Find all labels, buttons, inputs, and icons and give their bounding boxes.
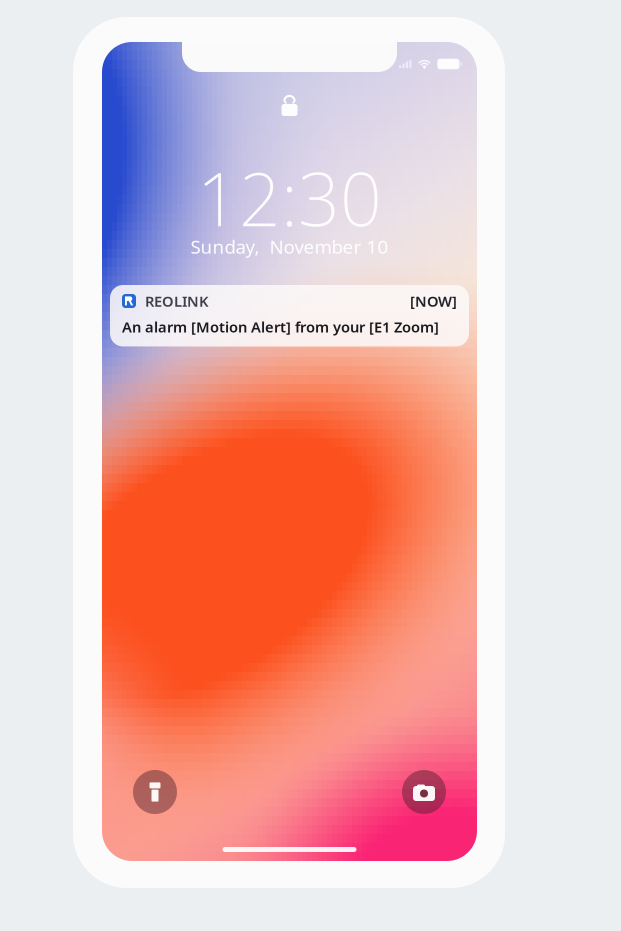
staticText: REOLINK — [145, 291, 208, 311]
button[interactable]: Camera — [402, 770, 446, 814]
button[interactable]: Flashlight — [133, 770, 177, 814]
staticText: 12:30 — [197, 149, 382, 246]
staticText: An alarm [Motion Alert] from your [E1 Zo… — [122, 317, 439, 336]
staticText: [NOW] — [410, 291, 457, 311]
button[interactable]: REOLINK — [110, 285, 469, 346]
staticText: Sunday, November 10 — [190, 234, 388, 259]
